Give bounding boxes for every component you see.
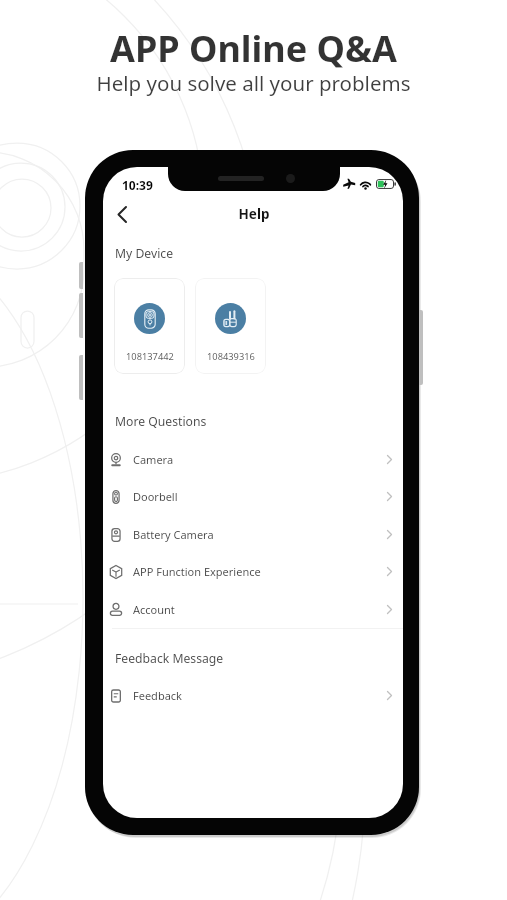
button[interactable]: Feedback <box>103 677 403 714</box>
staticText: Battery Camera <box>133 527 214 542</box>
button[interactable]: Battery Camera <box>103 516 403 553</box>
staticText: Doorbell <box>133 489 178 504</box>
staticText: APP Function Experience <box>133 564 261 579</box>
button[interactable]: 108137442 <box>114 278 185 374</box>
button[interactable]: Doorbell <box>103 478 403 515</box>
staticText: My Device <box>115 245 174 262</box>
staticText: 108439316 <box>207 350 255 363</box>
staticText: Feedback <box>133 688 182 703</box>
button[interactable]: 108439316 <box>195 278 266 374</box>
button[interactable]: APP Function Experience <box>103 553 403 590</box>
staticText: More Questions <box>115 413 207 430</box>
staticText: Help you solve all your problems <box>0 69 507 97</box>
button[interactable]: Account <box>103 591 403 628</box>
staticText: APP Online Q&A <box>0 24 507 73</box>
staticText: Help <box>104 205 403 223</box>
button[interactable]: Back <box>107 199 137 229</box>
button[interactable]: Camera <box>103 441 403 478</box>
staticText: Feedback Message <box>115 650 224 667</box>
staticText: Camera <box>133 452 174 467</box>
staticText: 108137442 <box>126 350 174 363</box>
staticText: 10:39 <box>122 177 153 193</box>
staticText: Account <box>133 602 175 617</box>
